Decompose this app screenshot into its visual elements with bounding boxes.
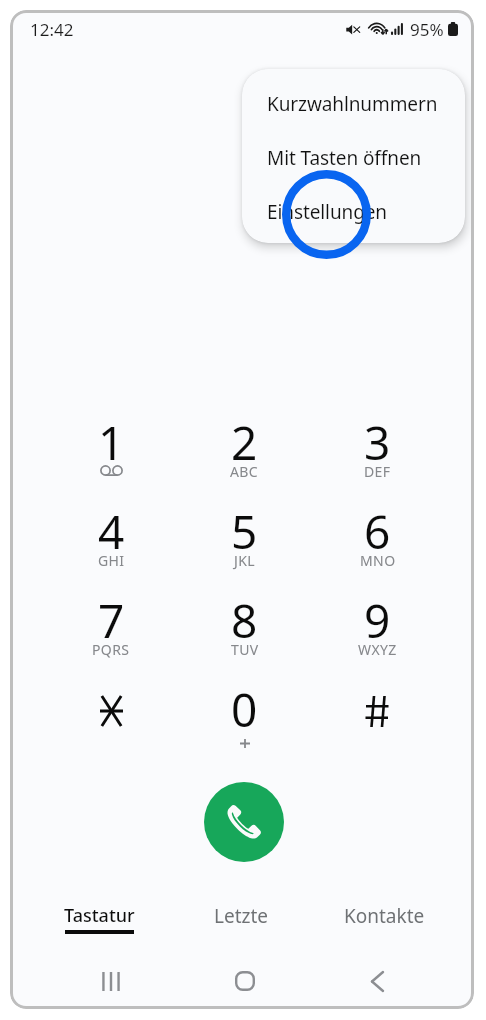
staticText: Kurzwahlnummern — [267, 91, 438, 117]
button[interactable]: Tastatur — [28, 897, 170, 945]
staticText: 4 — [98, 500, 125, 563]
button[interactable]: 2 — [178, 411, 311, 500]
button[interactable]: Home — [178, 961, 311, 1001]
staticText: 12:42 — [30, 18, 74, 40]
staticText: Tastatur — [64, 903, 135, 928]
button[interactable]: 6 — [311, 500, 444, 589]
staticText: WXYZ — [358, 640, 397, 659]
staticText: 2 — [231, 411, 258, 474]
button[interactable]: Back — [311, 961, 444, 1001]
staticText: Einstellungen — [267, 199, 388, 225]
staticText: TUV — [231, 640, 259, 659]
button[interactable]: Einstellungen — [242, 185, 465, 239]
staticText: GHI — [98, 551, 125, 570]
button[interactable]: Call — [204, 782, 284, 862]
staticText: 95% — [410, 18, 444, 40]
button[interactable]: 3 — [311, 411, 444, 500]
button[interactable]: star — [44, 678, 178, 767]
staticText: Kontakte — [344, 903, 425, 929]
staticText: 8 — [231, 589, 258, 652]
button[interactable]: 4 — [44, 500, 178, 589]
staticText: 9 — [364, 589, 391, 652]
button[interactable]: 9 — [311, 589, 444, 678]
button[interactable]: 5 — [178, 500, 311, 589]
staticText: 5 — [231, 500, 258, 563]
button[interactable]: Kurzwahlnummern — [242, 77, 465, 131]
staticText: 1 — [98, 411, 125, 474]
staticText: PQRS — [92, 640, 130, 659]
staticText: Letzte — [214, 903, 269, 929]
button[interactable]: Kontakte — [313, 897, 456, 945]
other: Tap indicator — [282, 170, 371, 259]
staticText: MNO — [360, 551, 396, 570]
staticText: Mit Tasten öffnen — [267, 145, 422, 171]
button[interactable]: Recent apps — [44, 961, 178, 1001]
staticText: 0 — [231, 678, 258, 741]
staticText: 3 — [364, 411, 391, 474]
other: hash — [365, 696, 390, 727]
button[interactable]: 1 — [44, 411, 178, 500]
button[interactable]: 0 — [178, 678, 311, 767]
button[interactable]: hash — [311, 678, 444, 767]
staticText: 7 — [98, 589, 125, 652]
staticText: DEF — [364, 462, 391, 481]
button[interactable]: 8 — [178, 589, 311, 678]
button[interactable]: 7 — [44, 589, 178, 678]
staticText: ABC — [230, 462, 259, 481]
staticText: 6 — [364, 500, 391, 563]
button[interactable]: Mit Tasten öffnen — [242, 131, 465, 185]
button[interactable]: Letzte — [170, 897, 313, 945]
staticText: JKL — [234, 551, 256, 570]
other: star — [100, 696, 123, 726]
